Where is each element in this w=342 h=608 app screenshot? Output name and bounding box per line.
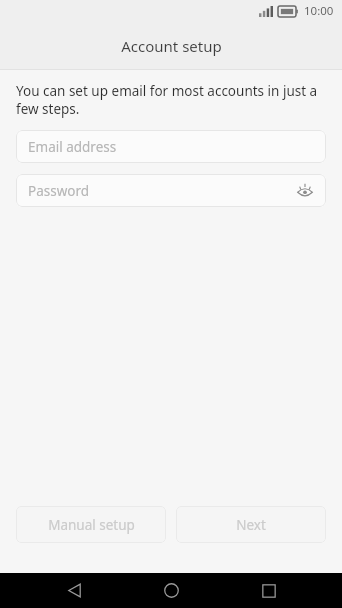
button[interactable]: Email address: [16, 130, 326, 163]
staticText: You can set up email for most accounts i…: [16, 82, 324, 118]
button[interactable]: Show password: [294, 180, 316, 202]
button[interactable]: Home: [147, 573, 195, 608]
button[interactable]: Recent apps: [245, 573, 293, 608]
staticText: Manual setup: [48, 516, 135, 534]
button[interactable]: Back: [50, 573, 98, 608]
button[interactable]: Password: [16, 174, 326, 207]
staticText: Account setup: [121, 36, 222, 56]
staticText: 10:00: [304, 3, 334, 19]
staticText: Next: [236, 516, 266, 534]
staticText: Password: [28, 182, 90, 200]
button[interactable]: Manual setup: [16, 506, 166, 543]
staticText: Email address: [28, 138, 117, 156]
button[interactable]: Next: [176, 506, 326, 543]
